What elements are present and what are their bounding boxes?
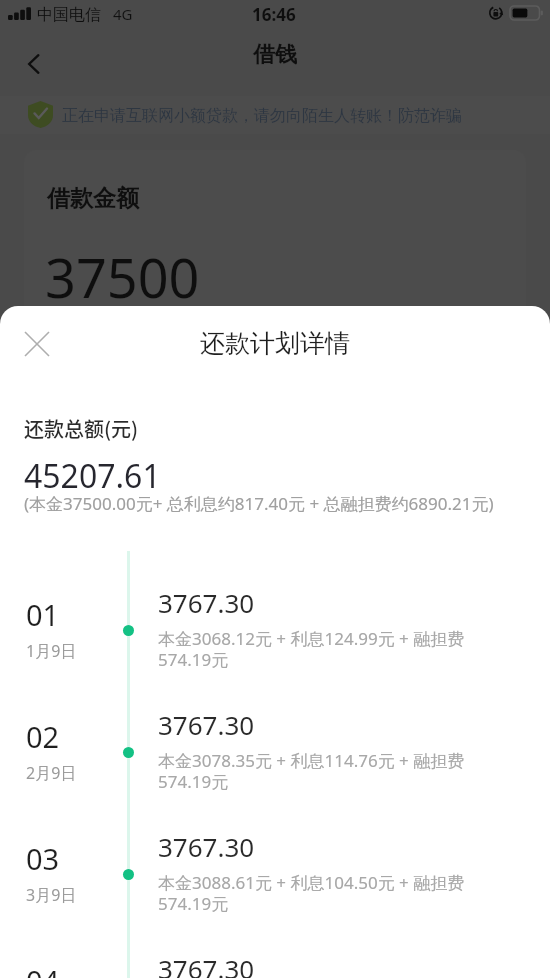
staticText: 中国电信 <box>37 5 101 25</box>
staticText: 4G <box>113 4 133 24</box>
staticText: 3767.30 <box>158 829 255 864</box>
staticText: 借钱 <box>253 41 297 69</box>
staticText: 3767.30 <box>158 707 255 742</box>
staticText: 03 <box>26 839 60 878</box>
staticText: 45207.61 <box>24 454 161 498</box>
button[interactable]: Back <box>8 38 60 90</box>
staticText: 02 <box>26 717 60 756</box>
staticText: 还款总额(元) <box>24 414 139 443</box>
staticText: 3767.30 <box>158 951 255 978</box>
staticText: 还款计划详情 <box>200 328 350 359</box>
staticText: 本金3078.35元 + 利息114.76元 + 融担费 574.19元 <box>158 749 465 794</box>
button[interactable]: 03 <box>0 813 550 935</box>
staticText: 01 <box>26 595 60 634</box>
staticText: 2月9日 <box>26 762 77 784</box>
staticText: 3月9日 <box>26 884 77 906</box>
staticText: 1月9日 <box>26 640 77 662</box>
button[interactable]: Close <box>12 319 62 369</box>
staticText: 16:46 <box>252 3 296 26</box>
staticText: 本金3088.61元 + 利息104.50元 + 融担费 574.19元 <box>158 871 465 916</box>
button[interactable]: 02 <box>0 691 550 813</box>
staticText: 本金3068.12元 + 利息124.99元 + 融担费 574.19元 <box>158 627 465 672</box>
staticText: 37500 <box>45 240 200 314</box>
staticText: 3767.30 <box>158 585 255 620</box>
button[interactable]: 04 <box>0 935 550 978</box>
staticText: 正在申请互联网小额贷款，请勿向陌生人转账！防范诈骗 <box>62 106 462 126</box>
button[interactable]: 01 <box>0 569 550 691</box>
staticText: 借款金额 <box>47 184 139 213</box>
staticText: (本金37500.00元+ 总利息约817.40元 + 总融担费约6890.21… <box>24 492 494 515</box>
staticText: 04 <box>26 961 60 978</box>
